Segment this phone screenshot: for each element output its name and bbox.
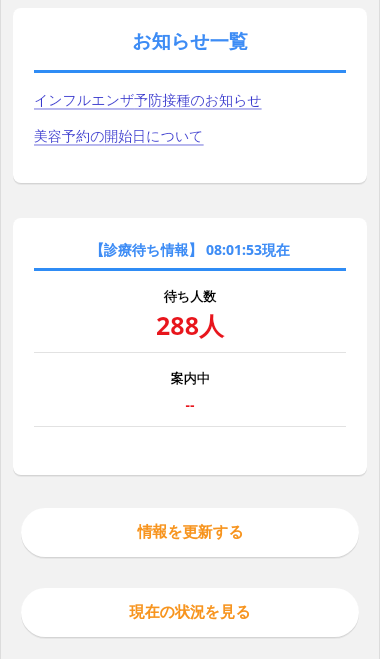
staticText: インフルエンザ予防接種のお知らせ xyxy=(34,92,262,110)
button[interactable]: 美容予約の開始日について xyxy=(13,125,367,149)
staticText: 案内中 xyxy=(13,370,367,386)
button[interactable]: インフルエンザ予防接種のお知らせ xyxy=(13,89,367,113)
staticText: 288人 xyxy=(13,308,367,342)
staticText: 【診療待ち情報】 08:01:53現在 xyxy=(13,240,367,259)
staticText: 現在の状況を見る xyxy=(129,603,251,622)
staticText: お知らせ一覧 xyxy=(13,30,367,54)
staticText: 待ち人数 xyxy=(13,288,367,304)
staticText: -- xyxy=(13,395,367,414)
staticText: 情報を更新する xyxy=(137,523,244,542)
button[interactable]: 現在の状況を見る xyxy=(21,588,359,637)
button[interactable]: 情報を更新する xyxy=(21,508,359,557)
staticText: 美容予約の開始日について xyxy=(34,128,204,146)
